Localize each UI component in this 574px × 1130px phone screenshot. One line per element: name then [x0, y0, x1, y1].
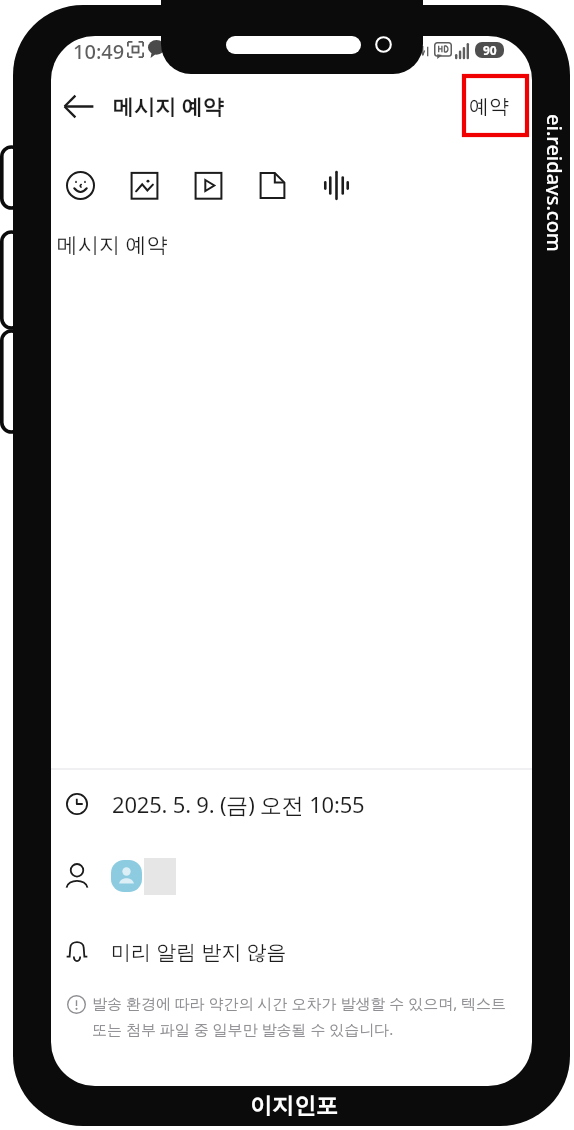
staticText: 이지인포	[7, 1092, 574, 1120]
button[interactable]: Image	[112, 153, 176, 217]
staticText: ei.reidays.com	[546, 114, 568, 252]
staticText: 90	[483, 42, 497, 58]
staticText: 발송 환경에 따라 약간의 시간 오차가 발생할 수 있으며, 텍스트	[92, 993, 507, 1013]
button[interactable]: 미리 알림 받지 않음	[51, 917, 532, 985]
button[interactable]: File	[240, 153, 304, 217]
staticText: 메시지 예약	[113, 92, 224, 121]
staticText: 메시지 예약	[57, 230, 168, 259]
button[interactable]: 2025. 5. 9. (금) 오전 10:55	[51, 770, 532, 838]
button[interactable]: 예약	[454, 82, 524, 131]
staticText: 예약	[469, 94, 509, 119]
staticText: 2025. 5. 9. (금) 오전 10:55	[112, 789, 365, 819]
staticText: 또는 첨부 파일 중 일부만 발송될 수 있습니다.	[92, 1019, 394, 1039]
button[interactable]: Audio	[304, 153, 368, 217]
button[interactable]: Back	[56, 84, 100, 128]
staticText: 10:49	[73, 38, 125, 65]
button[interactable]: Emoji	[51, 153, 112, 217]
button[interactable]: Video	[176, 153, 240, 217]
button[interactable]	[51, 842, 532, 910]
staticText: 미리 알림 받지 않음	[111, 938, 287, 965]
